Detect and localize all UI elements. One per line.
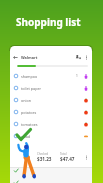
staticText: tomatoes — [21, 122, 38, 127]
staticText: $31.23 — [37, 156, 52, 162]
staticText: shampoo — [21, 74, 38, 79]
button[interactable]: potatoes — [10, 106, 92, 118]
staticText: onion — [21, 98, 31, 103]
button[interactable]: Add person — [75, 54, 81, 60]
button[interactable]: More — [84, 155, 89, 160]
staticText: toilet paper — [21, 86, 42, 91]
staticText: $47.47 — [60, 156, 75, 162]
staticText: Total — [60, 152, 67, 156]
staticText: salad — [21, 134, 31, 139]
button[interactable]: toilet paper — [10, 82, 92, 94]
button[interactable]: More options — [84, 55, 89, 60]
staticText: potatoes — [21, 110, 37, 115]
staticText: Checked — [37, 152, 49, 156]
staticText: Shopping list — [16, 15, 81, 29]
button[interactable]: Back — [13, 55, 18, 60]
button[interactable]: salad — [10, 130, 92, 142]
button[interactable]: onion — [10, 94, 92, 106]
button[interactable]: shampoo — [10, 70, 92, 82]
staticText: Walmart — [21, 55, 38, 60]
button[interactable]: tomatoes — [10, 118, 92, 130]
staticText: 1 — [76, 74, 78, 78]
